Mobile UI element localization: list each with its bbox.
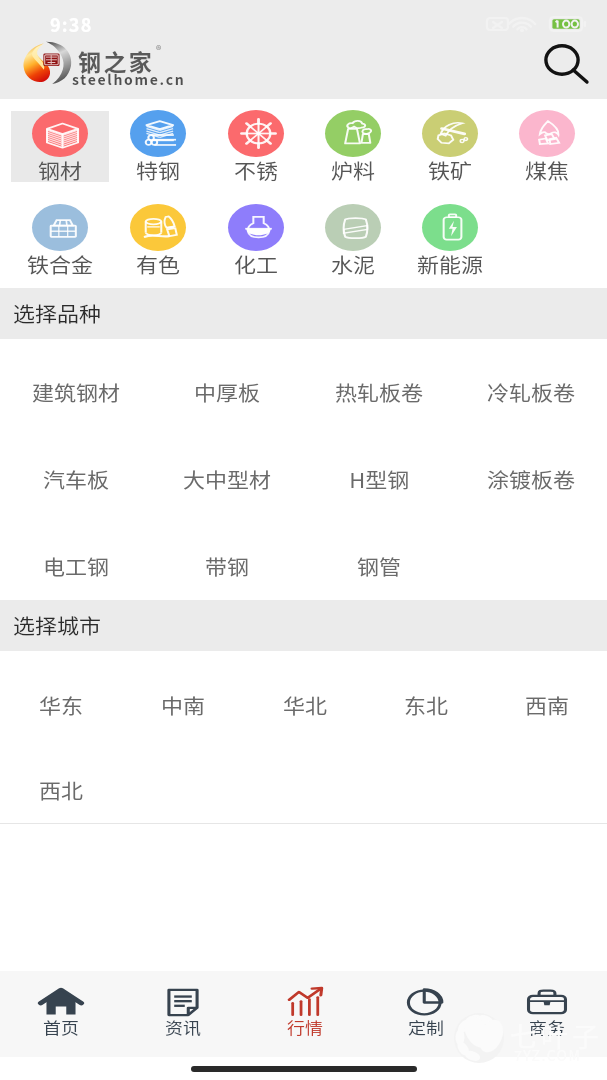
button[interactable]: 炉料 bbox=[304, 111, 401, 182]
button[interactable]: 热轧板卷 bbox=[303, 371, 455, 411]
button[interactable]: 冷轧板卷 bbox=[455, 371, 607, 411]
button[interactable]: 华东 bbox=[0, 684, 122, 724]
staticText: 选择城市 bbox=[13, 611, 101, 640]
button[interactable]: 水泥 bbox=[304, 205, 401, 276]
staticText: 新能源 bbox=[417, 250, 483, 277]
button[interactable]: 中南 bbox=[122, 684, 244, 724]
staticText: 华东 bbox=[39, 691, 83, 718]
staticText: 化工 bbox=[234, 250, 278, 277]
button[interactable]: 有色 bbox=[109, 205, 207, 276]
staticText: 钢之家 bbox=[78, 44, 155, 77]
button[interactable]: 建筑钢材 bbox=[0, 371, 151, 411]
staticText: 首页 bbox=[43, 1015, 80, 1037]
staticText: 选择品种 bbox=[13, 299, 101, 328]
button[interactable]: 特钢 bbox=[109, 111, 207, 182]
staticText: 汽车板 bbox=[43, 465, 109, 492]
staticText: 西南 bbox=[525, 691, 569, 718]
staticText: 电工钢 bbox=[43, 552, 109, 579]
button[interactable]: 商务 bbox=[486, 971, 607, 1057]
staticText: 行情 bbox=[287, 1015, 324, 1037]
button[interactable]: 铁矿 bbox=[401, 111, 498, 182]
button[interactable]: H型钢 bbox=[303, 458, 455, 498]
staticText: ® bbox=[156, 41, 162, 57]
staticText: 煤焦 bbox=[525, 156, 569, 183]
staticText: 炉料 bbox=[331, 156, 375, 183]
button[interactable]: Search bbox=[538, 36, 586, 84]
button[interactable]: 带钢 bbox=[151, 545, 303, 585]
staticText: 定制 bbox=[408, 1015, 445, 1037]
button[interactable]: 大中型材 bbox=[151, 458, 303, 498]
staticText: 水泥 bbox=[331, 250, 375, 277]
staticText: 钢管 bbox=[357, 552, 401, 579]
staticText: 冷轧板卷 bbox=[487, 378, 575, 405]
button[interactable]: 涂镀板卷 bbox=[455, 458, 607, 498]
staticText: 资讯 bbox=[165, 1015, 202, 1037]
button[interactable]: 行情 bbox=[244, 971, 365, 1057]
button[interactable]: 铁合金 bbox=[11, 205, 109, 276]
staticText: 华北 bbox=[283, 691, 327, 718]
button[interactable]: 西北 bbox=[0, 769, 122, 809]
button[interactable]: 钢管 bbox=[303, 545, 455, 585]
staticText: steelhome.cn bbox=[72, 69, 186, 89]
button[interactable]: 中厚板 bbox=[151, 371, 303, 411]
staticText: 钢材 bbox=[38, 156, 82, 183]
staticText: 带钢 bbox=[205, 552, 249, 579]
button[interactable]: 化工 bbox=[207, 205, 304, 276]
staticText: 7YZ.COM bbox=[514, 1045, 582, 1065]
button[interactable]: 不锈 bbox=[207, 111, 304, 182]
button[interactable]: 煤焦 bbox=[498, 111, 595, 182]
staticText: 铁合金 bbox=[27, 250, 93, 277]
button[interactable]: 首页 bbox=[0, 971, 122, 1057]
button[interactable]: 资讯 bbox=[122, 971, 244, 1057]
button[interactable]: 东北 bbox=[365, 684, 486, 724]
staticText: 热轧板卷 bbox=[335, 378, 423, 405]
staticText: 中南 bbox=[161, 691, 205, 718]
staticText: 特钢 bbox=[136, 156, 180, 183]
staticText: 七叶子 bbox=[510, 1016, 603, 1055]
staticText: 建筑钢材 bbox=[32, 378, 120, 405]
staticText: 有色 bbox=[136, 250, 180, 277]
button[interactable]: 钢材 bbox=[11, 111, 109, 182]
staticText: 大中型材 bbox=[183, 465, 271, 492]
button[interactable]: 定制 bbox=[365, 971, 486, 1057]
staticText: 中厚板 bbox=[194, 378, 260, 405]
button[interactable]: 汽车板 bbox=[0, 458, 151, 498]
staticText: 不锈 bbox=[234, 156, 278, 183]
button[interactable]: 西南 bbox=[486, 684, 607, 724]
staticText: 东北 bbox=[404, 691, 448, 718]
staticText: 商务 bbox=[529, 1015, 566, 1037]
staticText: 铁矿 bbox=[428, 156, 472, 183]
button[interactable]: 新能源 bbox=[401, 205, 498, 276]
staticText: 涂镀板卷 bbox=[487, 465, 575, 492]
button[interactable]: 华北 bbox=[244, 684, 365, 724]
staticText: H型钢 bbox=[349, 465, 410, 492]
button[interactable]: 电工钢 bbox=[0, 545, 151, 585]
staticText: 西北 bbox=[39, 776, 83, 803]
staticText: 9:38 bbox=[50, 11, 93, 37]
